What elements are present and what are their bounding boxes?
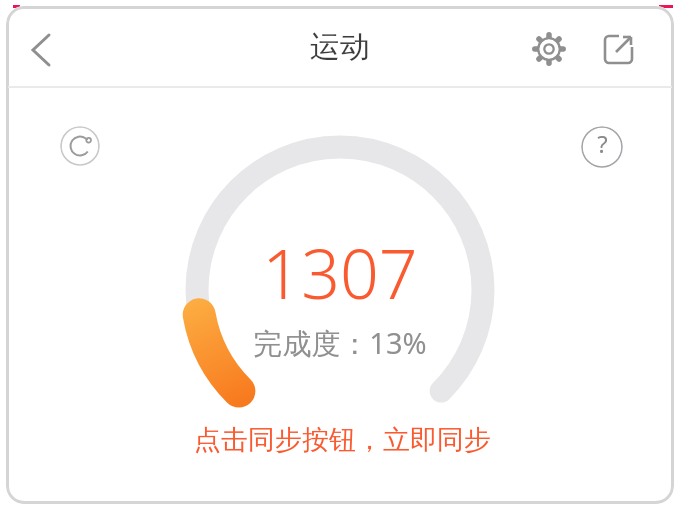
- staticText: ?: [597, 127, 608, 160]
- button[interactable]: [16, 26, 64, 74]
- button[interactable]: [597, 27, 641, 71]
- button[interactable]: 点击同步按钮，立即同步: [194, 423, 491, 457]
- button[interactable]: [60, 126, 100, 166]
- staticText: 完成度：13%: [253, 323, 427, 363]
- button[interactable]: [527, 27, 571, 71]
- staticText: 点击同步按钮，立即同步: [194, 423, 491, 457]
- staticText: 运动: [310, 28, 370, 66]
- staticText: 1307: [262, 226, 418, 319]
- button[interactable]: ?: [581, 126, 623, 168]
